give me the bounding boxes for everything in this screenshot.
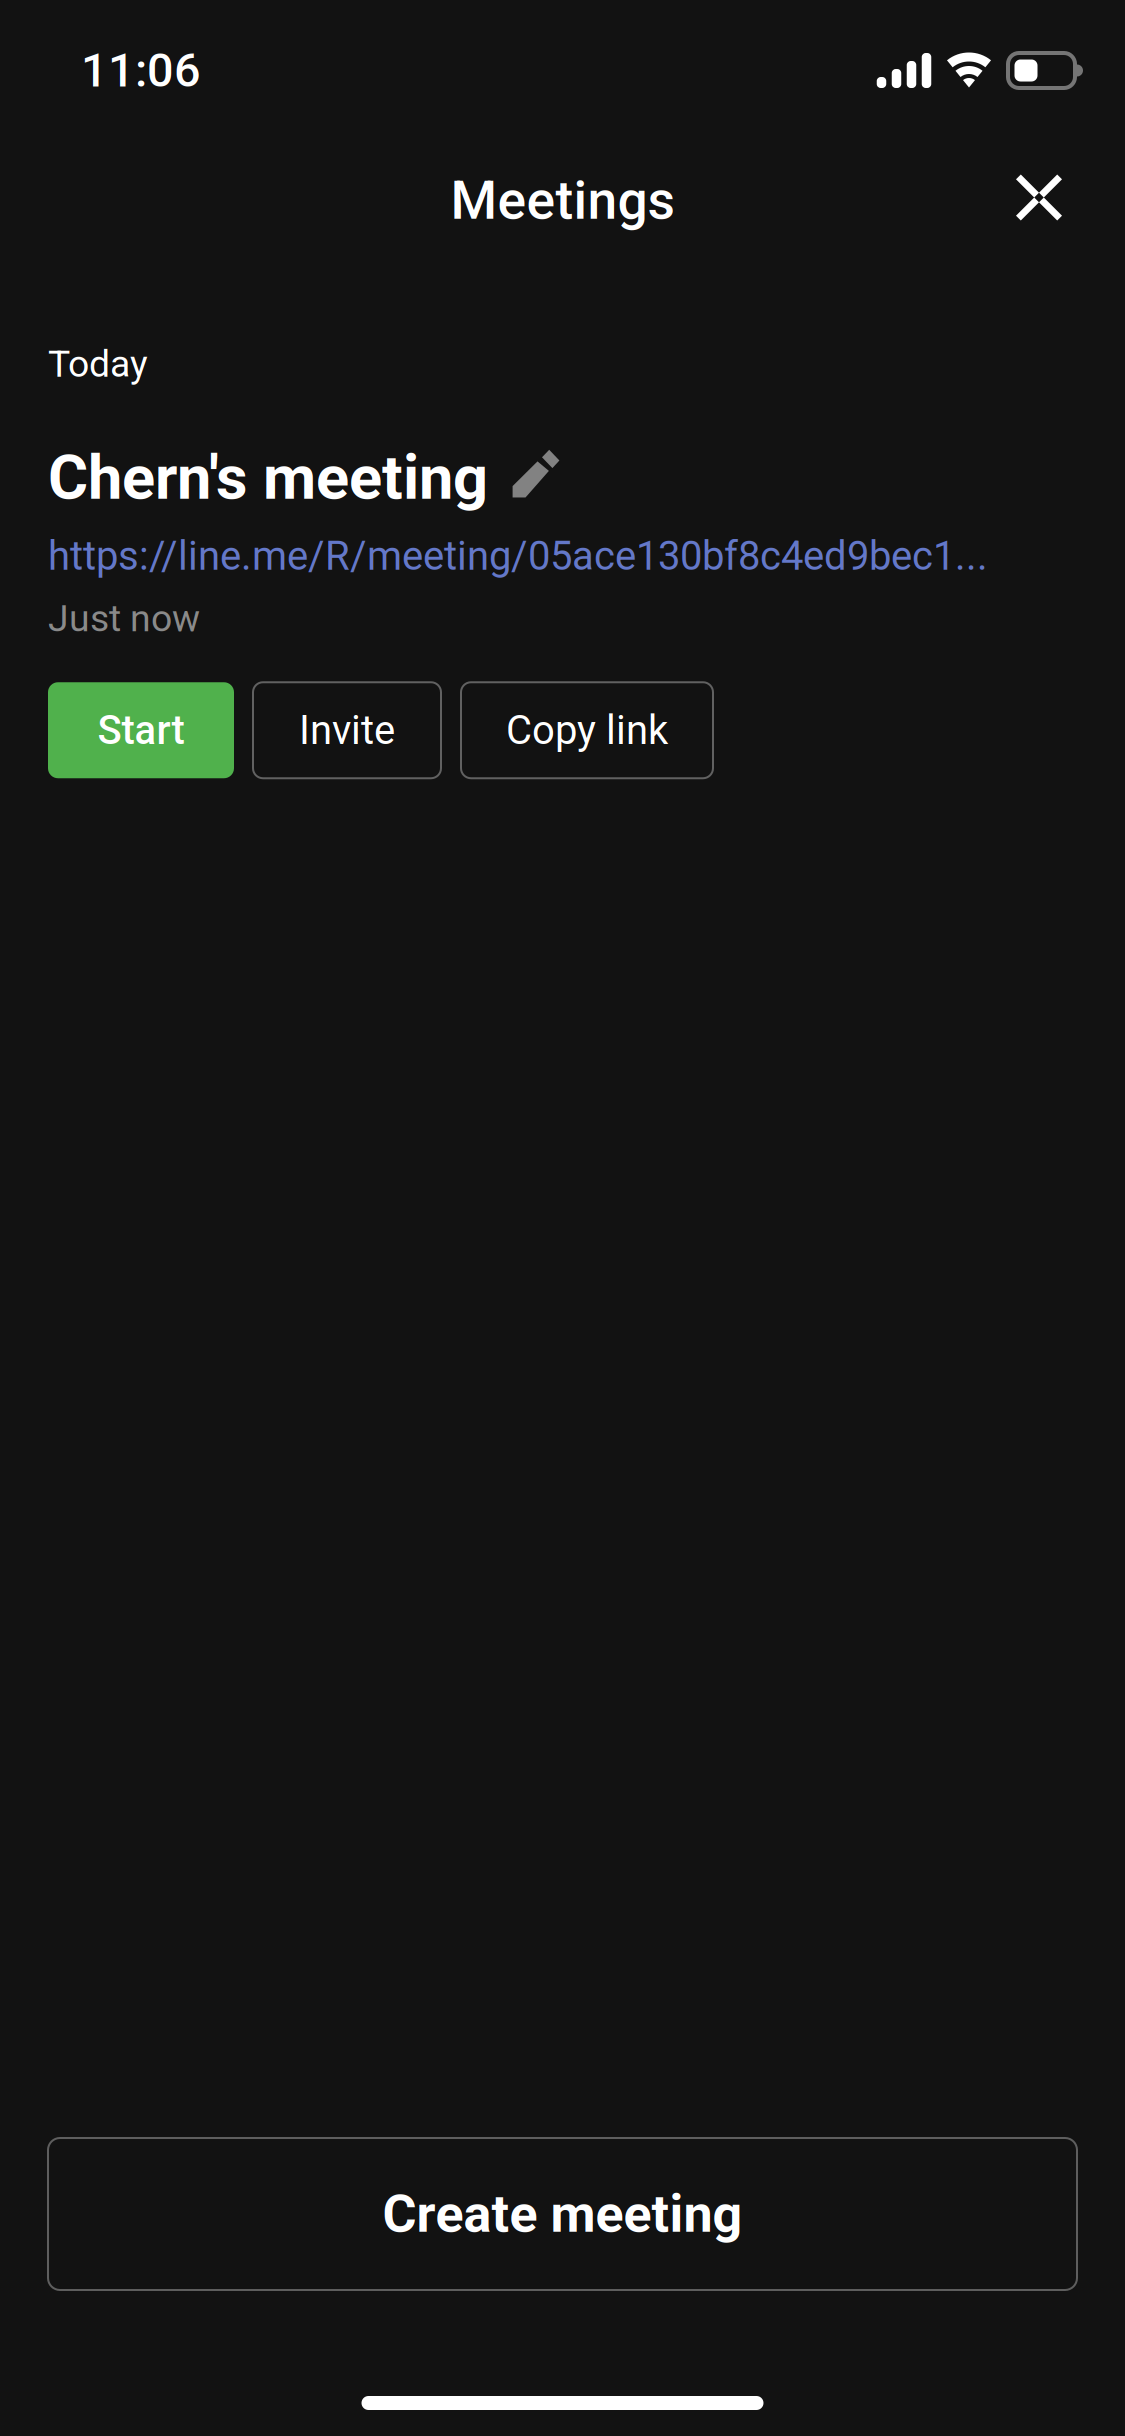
button[interactable]: Invite [253,682,441,778]
staticText: Start [97,707,184,754]
staticText: 11:06 [81,43,201,98]
button[interactable]: Copy link [461,682,713,778]
staticText: https://line.me/R/meeting/05ace130bf8c4e… [48,533,988,579]
staticText: Today [48,342,148,386]
staticText: Meetings [450,169,674,232]
button[interactable]: Start [48,682,234,778]
button[interactable]: Create meeting [48,2138,1077,2290]
staticText: Copy link [506,707,668,754]
staticText: Just now [48,596,200,640]
staticText: Invite [299,707,395,754]
button[interactable]: Close [997,158,1081,242]
staticText: Chern's meeting [48,442,488,514]
staticText: Create meeting [382,2183,742,2244]
